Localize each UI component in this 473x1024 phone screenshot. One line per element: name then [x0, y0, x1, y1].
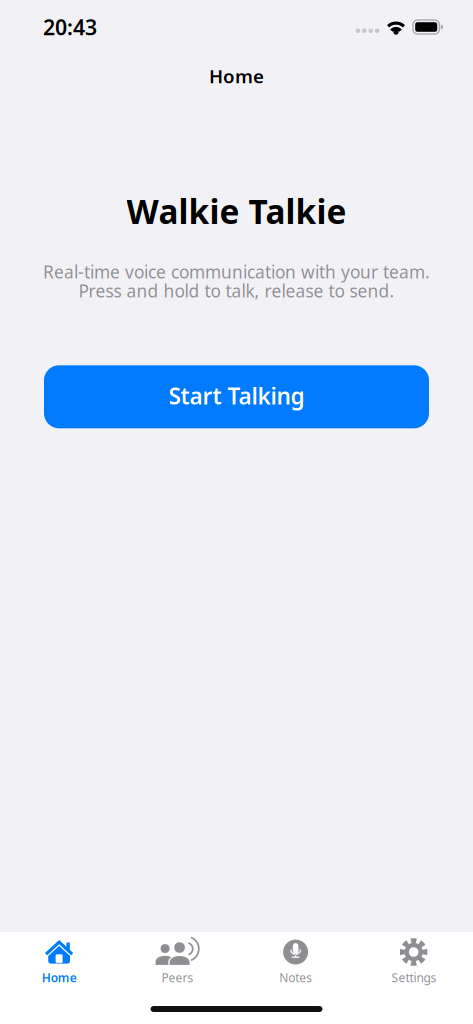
staticText: Notes: [279, 969, 312, 985]
button[interactable]: Start Talking: [44, 365, 429, 428]
button[interactable]: Home: [0, 932, 118, 988]
staticText: Settings: [391, 969, 436, 985]
button[interactable]: Settings: [355, 932, 473, 988]
staticText: Real-time voice communication with your …: [43, 260, 430, 283]
button[interactable]: Notes: [236, 932, 355, 988]
staticText: Press and hold to talk, release to send.: [78, 279, 394, 302]
staticText: Start Talking: [168, 381, 304, 411]
staticText: Home: [209, 64, 264, 88]
button[interactable]: Peers: [118, 932, 236, 988]
staticText: 20:43: [43, 13, 97, 41]
staticText: Walkie Talkie: [126, 189, 346, 233]
staticText: Peers: [161, 969, 193, 985]
staticText: Home: [42, 969, 77, 985]
